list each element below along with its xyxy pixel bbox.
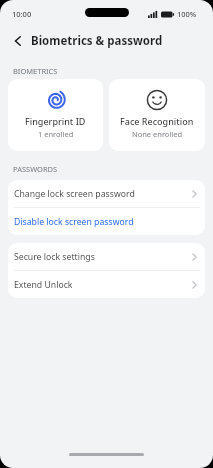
button[interactable] xyxy=(14,36,22,46)
button[interactable]: Change lock screen password xyxy=(8,180,205,207)
staticText: None enrolled xyxy=(132,129,183,139)
button[interactable]: Biometrics & password xyxy=(0,26,213,56)
staticText: Face Recognition xyxy=(120,115,194,127)
button[interactable]: Disable lock screen password xyxy=(8,208,205,235)
button[interactable]: Face Recognition xyxy=(109,79,205,151)
staticText: Secure lock settings xyxy=(14,251,95,263)
staticText: Fingerprint ID xyxy=(25,115,86,127)
button[interactable]: Secure lock settings xyxy=(8,243,205,270)
staticText: BIOMETRICS xyxy=(13,66,58,76)
staticText: 10:00 xyxy=(12,9,32,19)
staticText: PASSWORDS xyxy=(13,164,58,174)
staticText: 100% xyxy=(177,9,197,19)
staticText: Extend Unlock xyxy=(14,279,73,291)
staticText: Disable lock screen password xyxy=(14,216,134,228)
staticText: 1 enrolled xyxy=(38,129,74,139)
staticText: Change lock screen password xyxy=(14,188,135,200)
button[interactable]: Fingerprint ID xyxy=(8,79,103,151)
button[interactable]: Extend Unlock xyxy=(8,271,205,298)
staticText: Biometrics & password xyxy=(31,33,163,49)
